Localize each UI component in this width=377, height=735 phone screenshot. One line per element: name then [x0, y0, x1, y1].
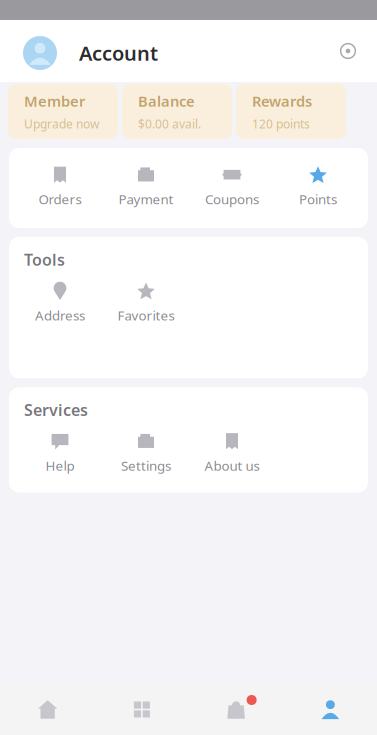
staticText: Services: [24, 399, 88, 420]
staticText: 120 points: [252, 116, 310, 132]
button[interactable]: Favorites: [103, 280, 189, 324]
staticText: Orders: [38, 190, 81, 208]
button[interactable]: Help: [17, 430, 103, 474]
staticText: Rewards: [252, 91, 312, 111]
button[interactable]: Rewards: [236, 84, 346, 139]
button[interactable]: Settings: [339, 30, 377, 72]
staticText: Favorites: [117, 306, 174, 324]
button[interactable]: Payment: [103, 164, 189, 208]
staticText: Member: [24, 91, 85, 111]
button[interactable]: Me: [283, 684, 377, 735]
staticText: About us: [204, 457, 259, 474]
staticText: Account: [79, 40, 158, 66]
button[interactable]: Home: [0, 684, 94, 735]
button[interactable]: Balance: [122, 84, 232, 139]
button[interactable]: Coupons: [189, 164, 275, 208]
button[interactable]: Cart: [188, 684, 283, 735]
button[interactable]: About us: [189, 430, 275, 474]
staticText: Balance: [138, 91, 195, 111]
staticText: Tools: [24, 249, 65, 270]
staticText: Coupons: [205, 190, 259, 208]
button[interactable]: Points: [275, 164, 361, 208]
button[interactable]: Settings: [103, 430, 189, 474]
staticText: Payment: [118, 190, 173, 208]
staticText: Settings: [121, 457, 171, 474]
staticText: Address: [35, 306, 85, 324]
button[interactable]: Address: [17, 280, 103, 324]
staticText: Upgrade now: [24, 116, 99, 132]
staticText: Help: [45, 457, 74, 474]
button[interactable]: Categories: [94, 684, 188, 735]
staticText: Points: [299, 190, 337, 208]
button[interactable]: Orders: [17, 164, 103, 208]
staticText: $0.00 avail.: [138, 116, 201, 132]
button[interactable]: Member: [8, 84, 118, 139]
button[interactable]: Account: [0, 24, 158, 78]
